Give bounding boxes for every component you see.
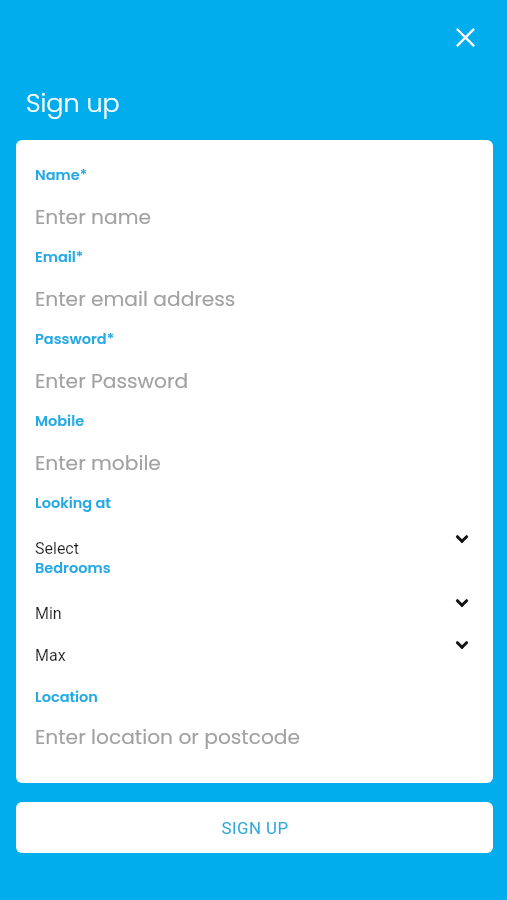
button[interactable] xyxy=(16,321,493,393)
staticText: Enter name xyxy=(35,203,151,231)
staticText: SIGN UP xyxy=(221,818,289,838)
staticText: Password* xyxy=(35,329,115,349)
button[interactable] xyxy=(16,157,493,229)
button[interactable] xyxy=(16,679,493,751)
staticText: Bedrooms xyxy=(35,558,111,578)
staticText: Name* xyxy=(35,165,88,185)
staticText: Looking at xyxy=(35,493,111,513)
staticText: Enter mobile xyxy=(35,449,161,477)
button[interactable]: Min dropdown xyxy=(16,595,493,629)
staticText: Enter location or postcode xyxy=(35,723,301,751)
button[interactable]: Max dropdown xyxy=(16,637,493,671)
button[interactable]: Select dropdown xyxy=(16,530,493,564)
staticText: Min xyxy=(35,604,62,623)
button[interactable] xyxy=(16,403,493,475)
button[interactable]: Close xyxy=(441,13,489,61)
staticText: Select xyxy=(35,539,79,558)
staticText: Enter Password xyxy=(35,367,189,395)
staticText: Max xyxy=(35,646,66,665)
staticText: Sign up xyxy=(26,85,120,121)
button[interactable] xyxy=(16,239,493,311)
staticText: Mobile xyxy=(35,411,85,431)
staticText: Enter email address xyxy=(35,285,236,313)
button[interactable]: SIGN UP xyxy=(16,802,493,853)
staticText: Email* xyxy=(35,247,84,267)
staticText: Location xyxy=(35,687,98,707)
